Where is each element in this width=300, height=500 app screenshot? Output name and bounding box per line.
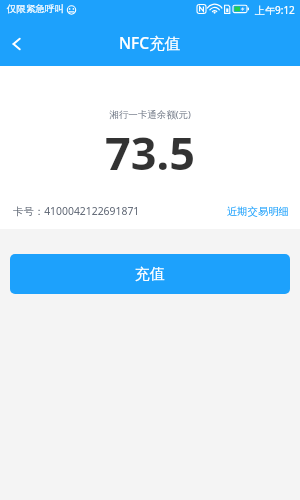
- staticText: 仅限紧急呼叫: [7, 3, 64, 15]
- staticText: NFC充值: [119, 32, 181, 53]
- staticText: 卡号：4100042122691871: [13, 204, 140, 218]
- staticText: 湘行一卡通余额(元): [0, 108, 300, 121]
- button[interactable]: 近期交易明细: [225, 201, 291, 222]
- staticText: 上午9:12: [255, 3, 295, 17]
- staticText: 73.5: [0, 122, 300, 183]
- staticText: 近期交易明细: [227, 205, 289, 218]
- staticText: 充值: [135, 265, 165, 284]
- button[interactable]: 充值: [10, 254, 290, 294]
- button[interactable]: Back: [0, 18, 34, 66]
